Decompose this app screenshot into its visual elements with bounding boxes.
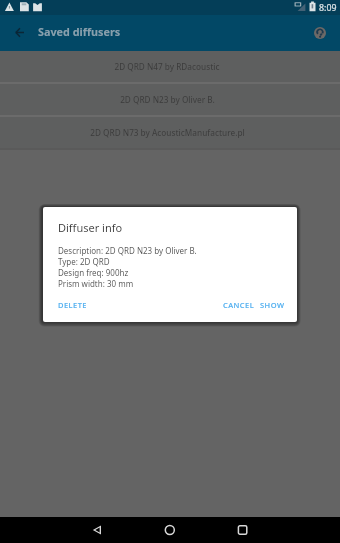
button[interactable]: DELETE [53, 296, 92, 314]
button[interactable]: SHOW [255, 296, 290, 314]
staticText: 8:09 [319, 2, 337, 14]
staticText: Saved diffusers [38, 24, 121, 39]
button[interactable]: Home [154, 517, 186, 543]
button[interactable]: 2D QRD N47 by RDacoustic [0, 51, 340, 82]
staticText: Type: 2D QRD [58, 256, 110, 267]
staticText: Diffuser info [58, 220, 123, 235]
staticText: 2D QRD N73 by AcousticManufacture.pl [90, 127, 245, 138]
button[interactable]: Back [7, 20, 31, 44]
button[interactable]: CANCEL [218, 296, 260, 314]
button[interactable]: Recent apps [227, 517, 259, 543]
button[interactable]: Help [308, 21, 332, 45]
staticText: Prism width: 30 mm [58, 278, 134, 289]
staticText: 2D QRD N23 by Oliver B. [120, 94, 215, 105]
button[interactable]: Back [82, 517, 114, 543]
button[interactable]: 2D QRD N23 by Oliver B. [0, 84, 340, 115]
staticText: Description: 2D QRD N23 by Oliver B. [58, 245, 197, 256]
button[interactable]: 2D QRD N73 by AcousticManufacture.pl [0, 117, 340, 148]
staticText: Design freq: 900hz [58, 267, 129, 278]
staticText: SHOW [260, 300, 285, 310]
staticText: DELETE [58, 300, 87, 310]
staticText: 2D QRD N47 by RDacoustic [114, 61, 220, 72]
staticText: CANCEL [223, 300, 255, 310]
